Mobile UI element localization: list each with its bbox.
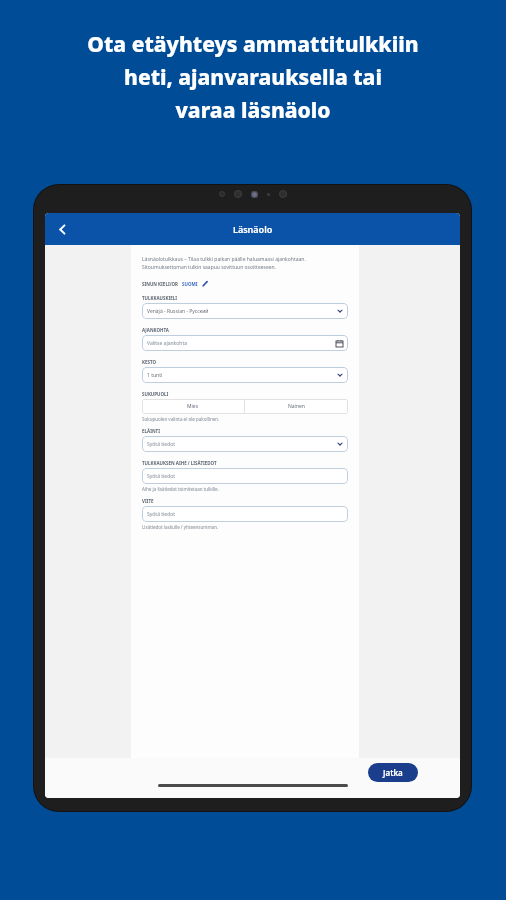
staticText: Aihe ja lisätiedot toimitetaan tulkille.: [142, 486, 219, 492]
staticText: KESTO: [142, 359, 157, 365]
staticText: Ota etäyhteys ammattitulkkiin: [87, 30, 419, 59]
staticText: AJANKOHTA: [142, 327, 169, 333]
staticText: SUOMI: [182, 281, 198, 287]
button[interactable]: Back: [51, 218, 73, 240]
staticText: Nainen: [288, 403, 305, 410]
staticText: Sitoumuksettoman tulkin saapuu sovittuun…: [142, 264, 276, 271]
staticText: 1 tunti: [147, 372, 163, 379]
button[interactable]: Valitse ajankohta: [142, 335, 348, 351]
other: Pick date: [335, 339, 343, 347]
button[interactable]: 1 tunti: [142, 367, 348, 383]
staticText: Venäjä - Russian - Русский: [147, 308, 209, 315]
button[interactable]: Venäjä - Russian - Русский: [142, 303, 348, 319]
staticText: Läsnäolo: [233, 223, 273, 235]
staticText: Syötä tiedot: [147, 473, 176, 480]
button[interactable]: Syötä tiedot: [142, 436, 348, 452]
button[interactable]: Jatka: [368, 763, 418, 782]
staticText: Lisätiedot laskulle / yhteensumman.: [142, 524, 219, 530]
staticText: ELÄINTI: [142, 428, 160, 434]
staticText: SUKUPUOLI: [142, 391, 169, 397]
staticText: varaa läsnäolo: [175, 96, 331, 125]
staticText: Sukupuolen valinta ei ole pakollinen.: [142, 416, 220, 422]
button[interactable]: Nainen: [245, 399, 348, 414]
staticText: VIITE: [142, 498, 154, 504]
button[interactable]: Syötä tiedot: [142, 506, 348, 522]
staticText: Mies: [187, 403, 199, 410]
staticText: heti, ajanvarauksella tai: [124, 63, 382, 92]
button[interactable]: Syötä tiedot: [142, 468, 348, 484]
staticText: Läsnäolotulkkaus – Tilaa tulkki paikan p…: [142, 256, 306, 263]
staticText: SINUN KIELI/OR: [142, 281, 179, 287]
staticText: TULKKAUKSEN AIHE / LISÄTIEDOT: [142, 460, 217, 466]
staticText: Valitse ajankohta: [147, 340, 187, 347]
staticText: TULKKAUSKIELI: [142, 295, 178, 301]
button[interactable]: Edit language: [201, 280, 208, 287]
button[interactable]: Mies: [142, 399, 244, 414]
staticText: Syötä tiedot: [147, 511, 176, 518]
staticText: Jatka: [383, 767, 403, 778]
staticText: Syötä tiedot: [147, 441, 176, 448]
